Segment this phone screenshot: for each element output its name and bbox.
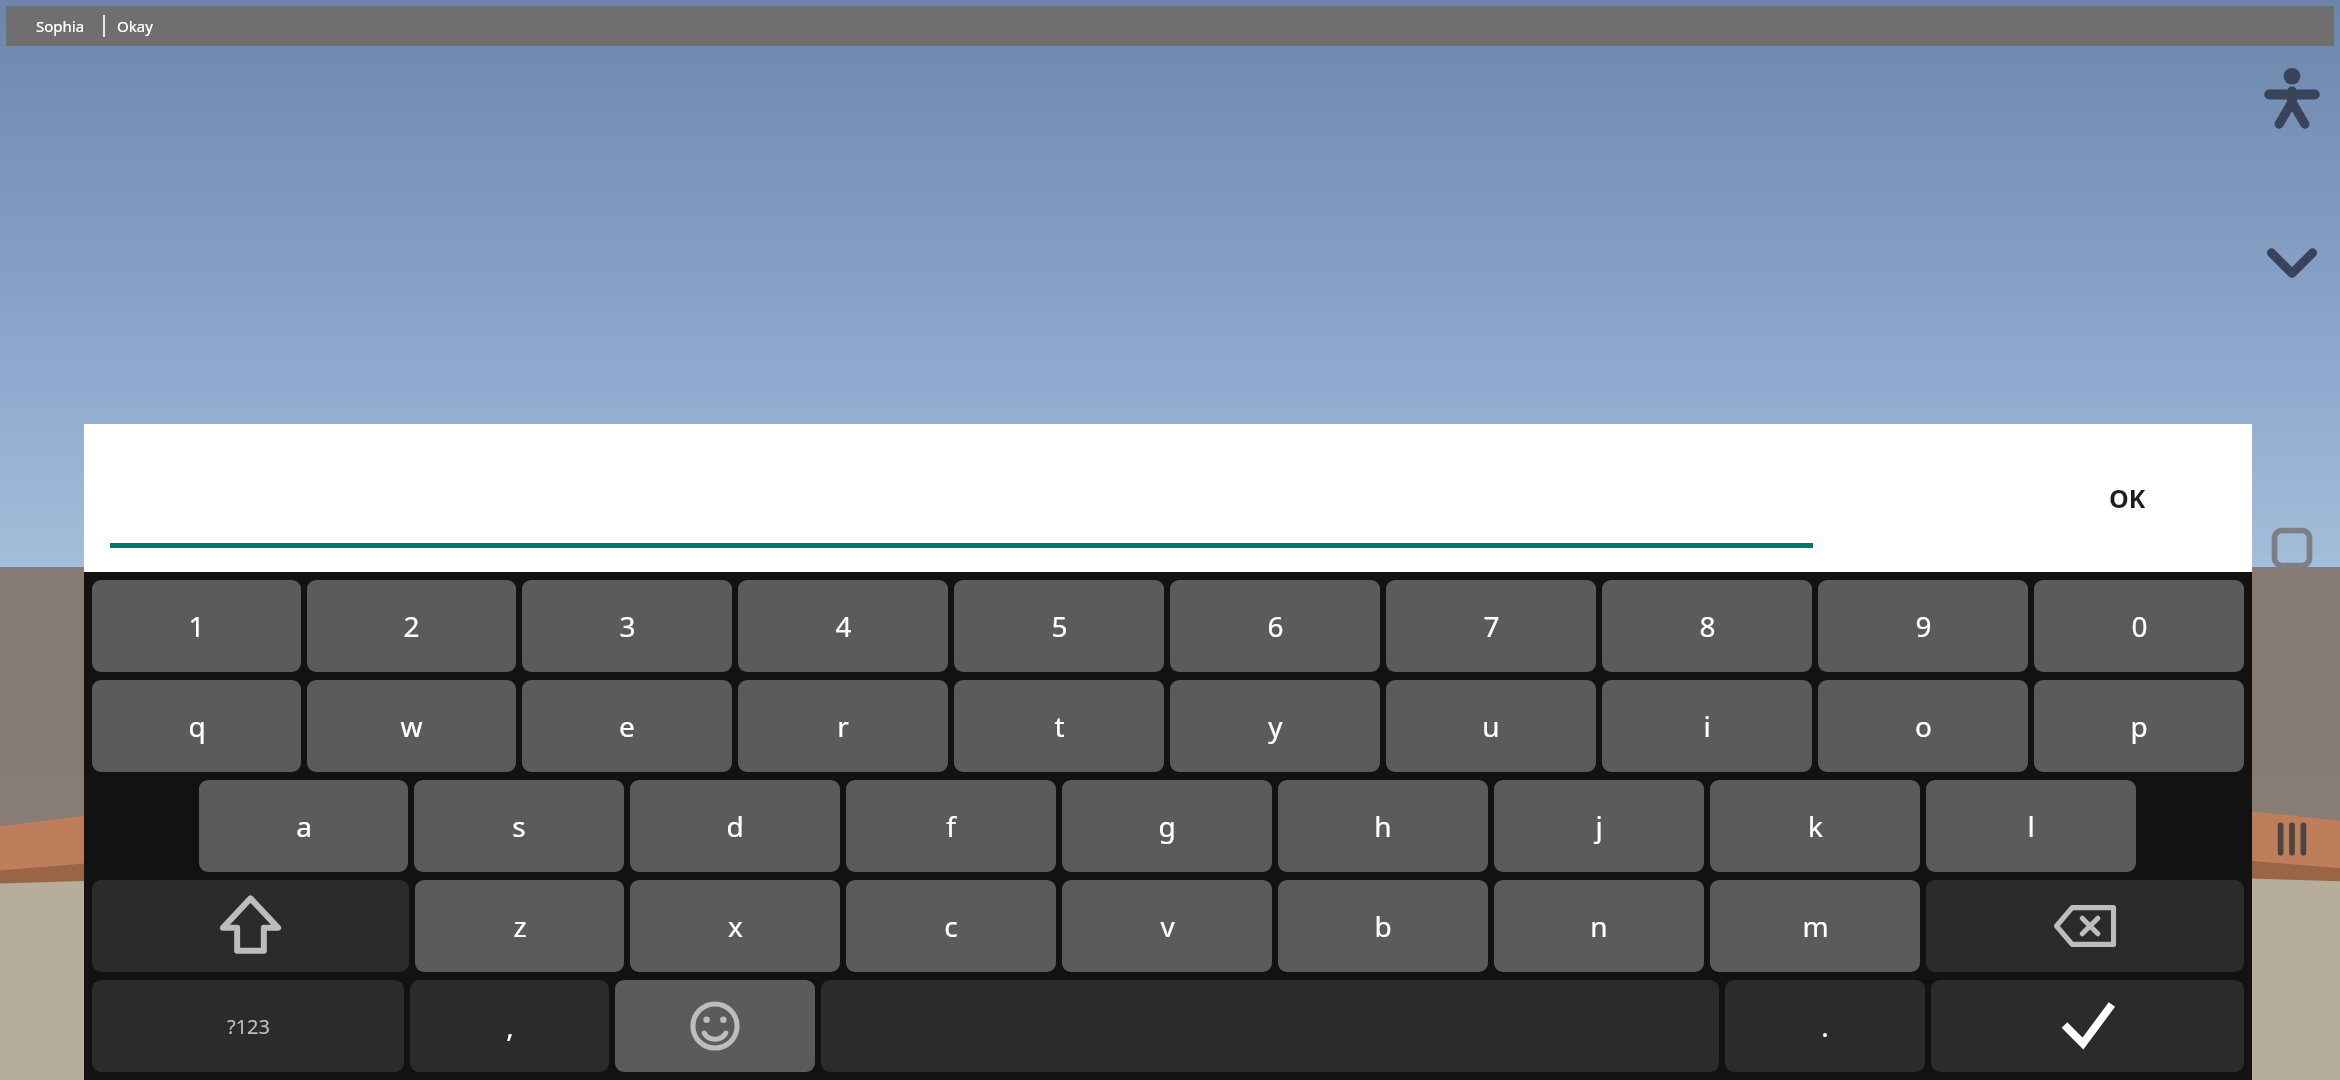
staticText: ?123 xyxy=(227,1013,270,1040)
button[interactable]: OK xyxy=(2089,467,2166,529)
button[interactable]: w xyxy=(307,680,516,772)
button[interactable]: i xyxy=(1602,680,1812,772)
staticText: b xyxy=(1374,907,1392,945)
button[interactable]: 8 xyxy=(1602,580,1812,672)
staticText: OK xyxy=(2109,481,2146,515)
button[interactable]: ?123 xyxy=(92,980,404,1072)
button[interactable]: j xyxy=(1494,780,1704,872)
button[interactable]: Enter xyxy=(1931,980,2244,1072)
button[interactable]: x xyxy=(630,880,840,972)
staticText: f xyxy=(946,807,956,845)
button[interactable]: h xyxy=(1278,780,1488,872)
staticText: , xyxy=(506,1007,514,1045)
staticText: 1 xyxy=(188,607,205,645)
button[interactable]: Emoji xyxy=(615,980,815,1072)
staticText: 4 xyxy=(835,607,852,645)
button[interactable]: 1 xyxy=(92,580,301,672)
staticText: 0 xyxy=(2131,607,2148,645)
button[interactable]: e xyxy=(522,680,732,772)
staticText: p xyxy=(2130,707,2148,745)
staticText: y xyxy=(1268,707,1283,745)
button[interactable]: Shift xyxy=(92,880,409,972)
button[interactable]: . xyxy=(1725,980,1925,1072)
button[interactable]: 6 xyxy=(1170,580,1380,672)
staticText: n xyxy=(1590,907,1608,945)
staticText: x xyxy=(728,907,743,945)
button[interactable]: 2 xyxy=(307,580,516,672)
staticText: z xyxy=(513,907,527,945)
staticText: k xyxy=(1808,807,1823,845)
staticText: j xyxy=(1595,807,1603,845)
button[interactable]: o xyxy=(1818,680,2028,772)
staticText: 9 xyxy=(1915,607,1932,645)
button[interactable]: c xyxy=(846,880,1056,972)
staticText: d xyxy=(726,807,744,845)
staticText: v xyxy=(1160,907,1175,945)
button[interactable]: k xyxy=(1710,780,1920,872)
staticText: u xyxy=(1482,707,1500,745)
button[interactable]: s xyxy=(414,780,624,872)
button[interactable]: t xyxy=(954,680,1164,772)
button[interactable]: Recents xyxy=(2254,801,2330,877)
button[interactable]: 3 xyxy=(522,580,732,672)
staticText: Sophia xyxy=(36,16,85,36)
button[interactable]: m xyxy=(1710,880,1920,972)
button[interactable]: 7 xyxy=(1386,580,1596,672)
staticText: 5 xyxy=(1051,607,1068,645)
staticText: c xyxy=(944,907,958,945)
staticText: e xyxy=(619,707,635,745)
staticText: q xyxy=(188,707,206,745)
button[interactable]: f xyxy=(846,780,1056,872)
staticText: . xyxy=(1821,1007,1829,1045)
button[interactable]: Collapse keyboard xyxy=(2254,224,2330,300)
button[interactable]: Home xyxy=(2254,510,2330,586)
button[interactable]: v xyxy=(1062,880,1272,972)
staticText: m xyxy=(1802,907,1829,945)
button[interactable]: 9 xyxy=(1818,580,2028,672)
staticText: 2 xyxy=(403,607,420,645)
staticText: r xyxy=(837,707,849,745)
button[interactable]: y xyxy=(1170,680,1380,772)
button[interactable]: p xyxy=(2034,680,2244,772)
button[interactable]: q xyxy=(92,680,301,772)
staticText: i xyxy=(1703,707,1711,745)
button[interactable]: z xyxy=(415,880,624,972)
staticText: s xyxy=(512,807,526,845)
staticText: o xyxy=(1915,707,1932,745)
button[interactable]: 4 xyxy=(738,580,948,672)
button[interactable]: b xyxy=(1278,880,1488,972)
button[interactable]: d xyxy=(630,780,840,872)
button[interactable]: 0 xyxy=(2034,580,2244,672)
staticText: 7 xyxy=(1483,607,1500,645)
staticText: l xyxy=(2027,807,2035,845)
staticText: Okay xyxy=(117,16,153,36)
staticText: g xyxy=(1158,807,1176,845)
staticText: 3 xyxy=(619,607,636,645)
button[interactable]: 5 xyxy=(954,580,1164,672)
staticText: 8 xyxy=(1699,607,1716,645)
button[interactable]: , xyxy=(410,980,609,1072)
button[interactable]: l xyxy=(1926,780,2136,872)
staticText: a xyxy=(296,807,312,845)
button[interactable]: Sophia xyxy=(6,6,2334,46)
staticText: w xyxy=(400,707,423,745)
staticText: t xyxy=(1054,707,1065,745)
staticText: h xyxy=(1374,807,1392,845)
button[interactable]: a xyxy=(199,780,408,872)
button[interactable]: g xyxy=(1062,780,1272,872)
button[interactable]: u xyxy=(1386,680,1596,772)
button[interactable]: r xyxy=(738,680,948,772)
button[interactable]: Backspace xyxy=(1926,880,2244,972)
button[interactable]: n xyxy=(1494,880,1704,972)
staticText: 6 xyxy=(1267,607,1284,645)
button[interactable]: Accessibility xyxy=(2254,58,2330,134)
